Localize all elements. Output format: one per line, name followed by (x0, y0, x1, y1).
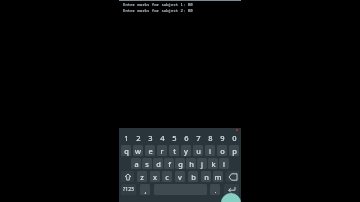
staticText: e (148, 146, 153, 156)
staticText: 6 (184, 133, 189, 143)
staticText: 8 (208, 133, 213, 143)
staticText: v (178, 172, 182, 182)
button[interactable]: Home (221, 193, 241, 202)
button[interactable]: Enter (224, 184, 239, 195)
button[interactable]: 3 (145, 132, 155, 143)
staticText: 0 (232, 133, 237, 143)
button[interactable]: f (164, 158, 174, 169)
button[interactable]: m (213, 171, 223, 182)
button[interactable]: 7 (193, 132, 203, 143)
staticText: Enter marks for subject 2: 80 (123, 8, 193, 13)
button[interactable]: l (219, 158, 229, 169)
button[interactable]: 8 (205, 132, 215, 143)
button[interactable]: c (162, 171, 172, 182)
staticText: s (145, 159, 149, 169)
staticText: d (156, 159, 161, 169)
button[interactable]: h (186, 158, 196, 169)
staticText: c (165, 172, 169, 182)
staticText: 3 (148, 133, 153, 143)
button[interactable]: p (229, 145, 239, 156)
button[interactable]: o (217, 145, 227, 156)
staticText: a (134, 159, 139, 169)
staticText: p (232, 146, 237, 156)
button[interactable]: k (208, 158, 218, 169)
staticText: 4 (160, 133, 165, 143)
button[interactable]: 4 (157, 132, 167, 143)
staticText: ?123 (123, 186, 134, 193)
button[interactable]: x (150, 171, 160, 182)
staticText: o (220, 146, 225, 156)
button[interactable]: . (210, 184, 220, 195)
staticText: 2 (136, 133, 141, 143)
button[interactable]: n (201, 171, 211, 182)
staticText: h (189, 159, 194, 169)
staticText: r (160, 146, 164, 156)
staticText: m (214, 172, 222, 182)
button[interactable]: Shift (121, 171, 134, 182)
staticText: b (191, 172, 196, 182)
staticText: u (196, 146, 201, 156)
staticText: f (168, 159, 171, 169)
button[interactable]: 2 (133, 132, 143, 143)
staticText: 9 (220, 133, 225, 143)
button[interactable]: d (153, 158, 163, 169)
staticText: k (211, 159, 216, 169)
button[interactable]: ?123 (121, 184, 136, 195)
button[interactable]: b (188, 171, 198, 182)
staticText: l (223, 159, 225, 169)
button[interactable]: 5 (169, 132, 179, 143)
button[interactable]: , (140, 184, 150, 195)
button[interactable]: w (133, 145, 143, 156)
button[interactable]: g (175, 158, 185, 169)
staticText: x (153, 172, 157, 182)
staticText: j (201, 159, 203, 169)
staticText: i (209, 146, 211, 156)
button[interactable]: s (142, 158, 152, 169)
button[interactable]: Backspace (226, 171, 239, 182)
staticText: Enter marks for subject 1: 80 (123, 2, 193, 7)
staticText: 1 (124, 133, 129, 143)
button[interactable]: u (193, 145, 203, 156)
button[interactable]: y (181, 145, 191, 156)
button[interactable]: 9 (217, 132, 227, 143)
button[interactable]: z (137, 171, 147, 182)
staticText: z (140, 172, 144, 182)
staticText: 5 (172, 133, 177, 143)
staticText: 7 (196, 133, 201, 143)
staticText: y (184, 146, 188, 156)
button[interactable]: i (205, 145, 215, 156)
button[interactable]: q (121, 145, 131, 156)
button[interactable]: 1 (121, 132, 131, 143)
staticText: , (144, 185, 147, 195)
button[interactable]: j (197, 158, 207, 169)
staticText: . (214, 185, 217, 195)
button[interactable]: v (175, 171, 185, 182)
button[interactable]: e (145, 145, 155, 156)
button[interactable]: 6 (181, 132, 191, 143)
staticText: q (124, 146, 129, 156)
button[interactable]: a (131, 158, 141, 169)
button[interactable]: t (169, 145, 179, 156)
button[interactable]: 0 (229, 132, 239, 143)
staticText: t (173, 146, 176, 156)
button[interactable]: r (157, 145, 167, 156)
staticText: n (204, 172, 209, 182)
staticText: g (178, 159, 183, 169)
staticText: w (135, 146, 141, 156)
